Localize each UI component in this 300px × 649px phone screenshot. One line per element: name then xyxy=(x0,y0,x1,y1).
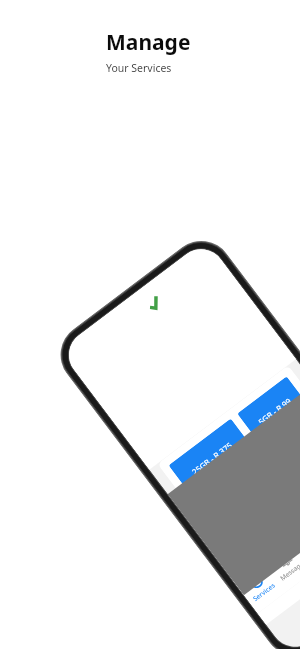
button[interactable]: 5GB - R 99 xyxy=(237,376,300,446)
staticText: Manage xyxy=(106,28,191,57)
staticText: 25GB - R 375 xyxy=(189,439,234,477)
button[interactable]: Services xyxy=(235,562,283,609)
staticText: Your Services xyxy=(106,61,172,75)
button[interactable]: 25GB - R 375 xyxy=(168,418,255,497)
staticText: Services xyxy=(251,580,277,603)
button[interactable]: Status xyxy=(293,517,300,565)
staticText: Messages xyxy=(278,557,300,583)
button[interactable]: Messages xyxy=(263,539,300,587)
staticText: 5GB - R 99 xyxy=(256,395,293,427)
